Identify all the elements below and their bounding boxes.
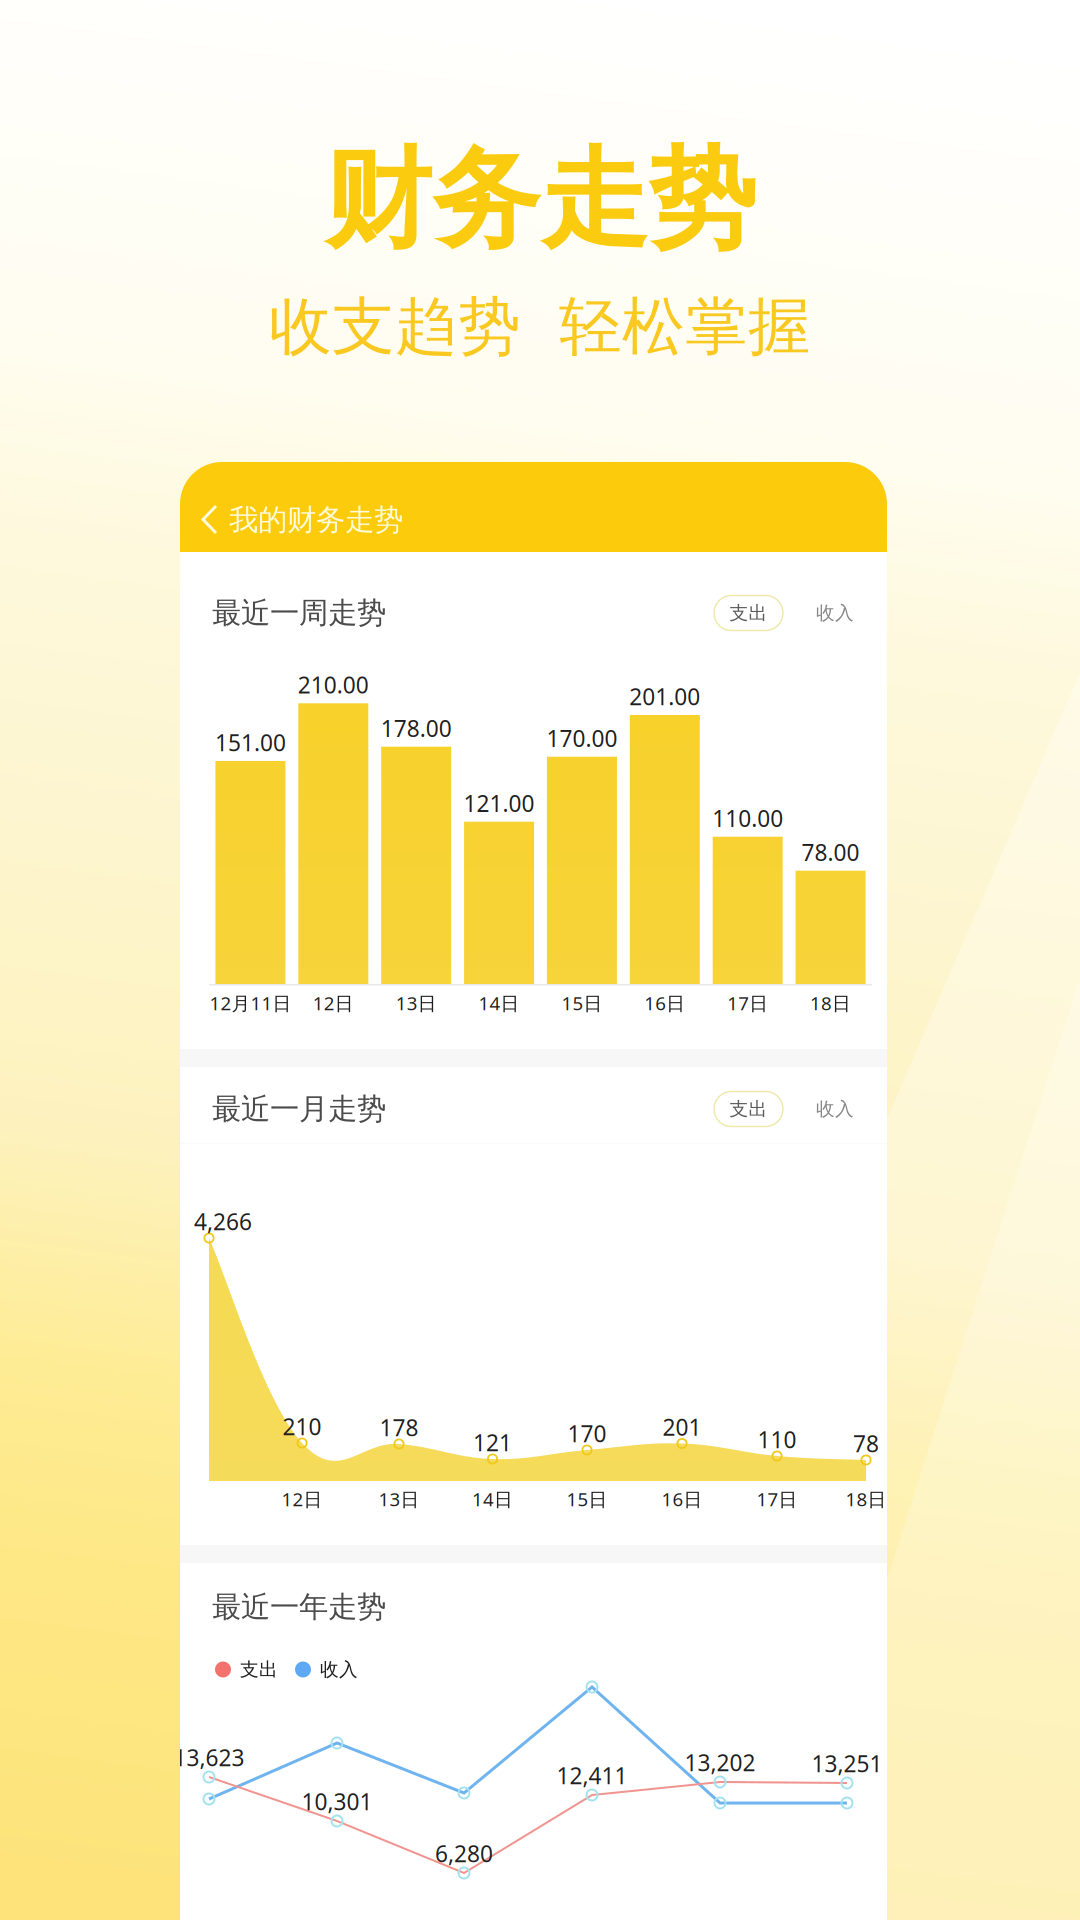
staticText: 121.00	[464, 788, 535, 818]
staticText: 151.00	[215, 727, 286, 757]
staticText: 18日	[845, 1487, 886, 1511]
staticText: 10,301	[301, 1786, 372, 1816]
staticText: 110	[757, 1424, 796, 1454]
staticText: 178.00	[381, 713, 452, 743]
staticText: 收入	[816, 601, 854, 624]
staticText: 110.00	[712, 803, 783, 833]
staticText: 12日	[281, 1487, 322, 1511]
staticText: 78.00	[802, 837, 860, 867]
button[interactable]: 支出	[714, 595, 783, 630]
staticText: 收入	[320, 1658, 358, 1681]
staticText: 178	[379, 1412, 418, 1442]
staticText: 210.00	[298, 670, 369, 700]
staticText: 支出	[240, 1658, 278, 1681]
staticText: 12,411	[556, 1760, 627, 1790]
staticText: 15日	[561, 991, 602, 1015]
staticText: 4,266	[194, 1206, 252, 1236]
staticText: 13日	[396, 991, 437, 1015]
button[interactable]: 我的财务走势	[180, 462, 887, 552]
staticText: 210	[282, 1411, 321, 1441]
staticText: 13,623	[173, 1742, 244, 1772]
staticText: 12月11日	[209, 991, 291, 1015]
staticText: 最近一月走势	[212, 1091, 386, 1127]
staticText: 支出	[729, 601, 767, 624]
staticText: 121	[473, 1427, 512, 1457]
staticText: 收支趋势 轻松掌握	[269, 288, 811, 365]
staticText: 13,251	[811, 1748, 882, 1778]
staticText: 201	[662, 1412, 701, 1442]
staticText: 18日	[810, 991, 851, 1015]
staticText: 13,202	[684, 1747, 755, 1777]
staticText: 6,280	[435, 1838, 493, 1868]
staticText: 我的财务走势	[229, 502, 403, 538]
staticText: 最近一年走势	[212, 1589, 386, 1625]
staticText: 17日	[756, 1487, 797, 1511]
staticText: 201.00	[629, 681, 700, 711]
staticText: 13日	[378, 1487, 419, 1511]
staticText: 12日	[313, 991, 354, 1015]
staticText: 17日	[727, 991, 768, 1015]
staticText: 财务走势	[324, 134, 756, 266]
staticText: 170	[567, 1418, 606, 1448]
staticText: 16日	[644, 991, 685, 1015]
staticText: 14日	[472, 1487, 513, 1511]
button[interactable]: 收入	[800, 595, 870, 630]
staticText: 15日	[566, 1487, 607, 1511]
staticText: 170.00	[546, 723, 617, 753]
staticText: 收入	[816, 1097, 854, 1120]
staticText: 16日	[661, 1487, 702, 1511]
button[interactable]: 支出	[714, 1091, 783, 1126]
staticText: 14日	[479, 991, 520, 1015]
staticText: 78	[853, 1428, 879, 1458]
button[interactable]: 收入	[800, 1091, 870, 1126]
staticText: 支出	[729, 1097, 767, 1120]
staticText: 最近一周走势	[212, 595, 386, 631]
